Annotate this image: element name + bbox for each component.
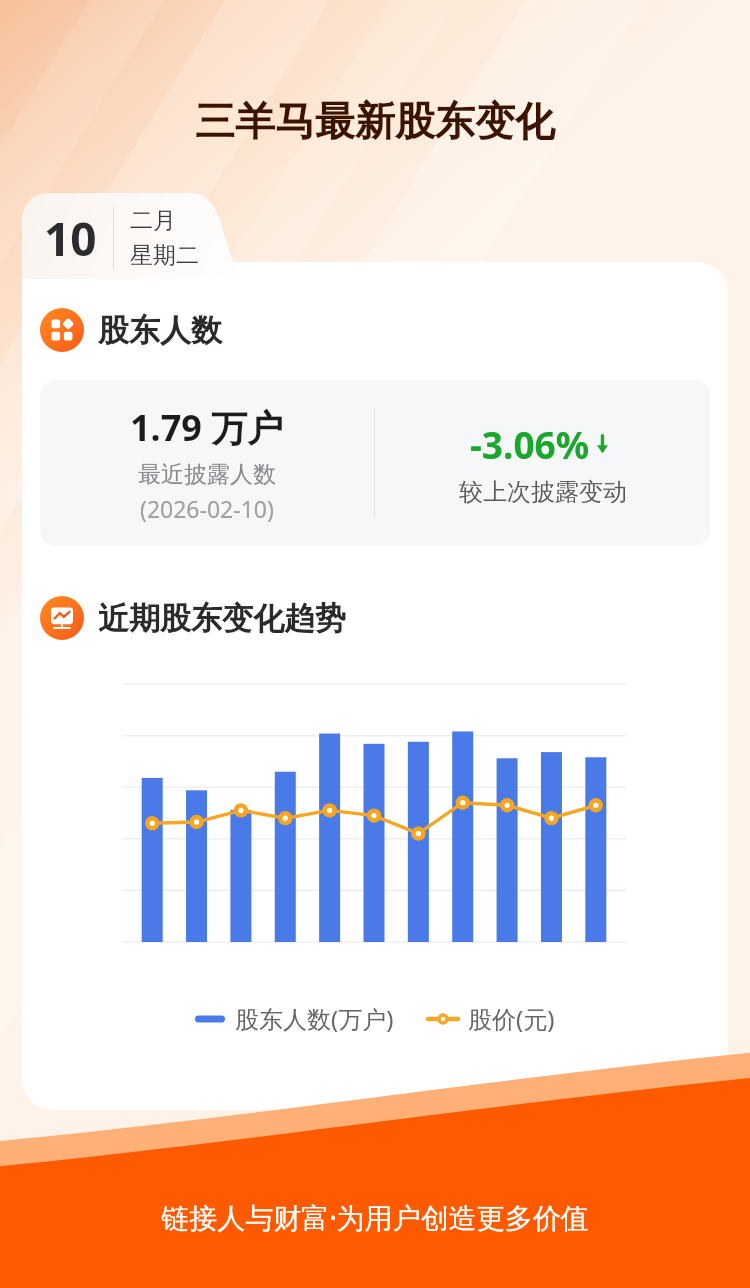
staticText: 二月 — [130, 206, 176, 235]
staticText: 1.79 万户 — [130, 403, 284, 452]
staticText: 股价(元) — [468, 1002, 555, 1035]
staticText: 较上次披露变动 — [459, 477, 627, 507]
staticText: 股东人数 — [98, 311, 222, 350]
staticText: 链接人与财富·为用户创造更多价值 — [0, 1198, 750, 1236]
staticText: 股东人数(万户) — [235, 1002, 394, 1035]
button[interactable]: 股东人数 — [40, 306, 222, 354]
staticText: 星期二 — [130, 241, 199, 270]
staticText: -3.06% — [470, 419, 590, 469]
button[interactable]: 1.79 万户 — [40, 380, 710, 546]
staticText: (2026-02-10) — [140, 493, 274, 524]
staticText: 三羊马最新股东变化 — [0, 96, 750, 146]
staticText: 最近披露人数 — [138, 460, 276, 489]
button[interactable]: 近期股东变化趋势 — [40, 594, 346, 642]
staticText: 10 — [44, 207, 97, 270]
staticText: 近期股东变化趋势 — [98, 599, 346, 638]
